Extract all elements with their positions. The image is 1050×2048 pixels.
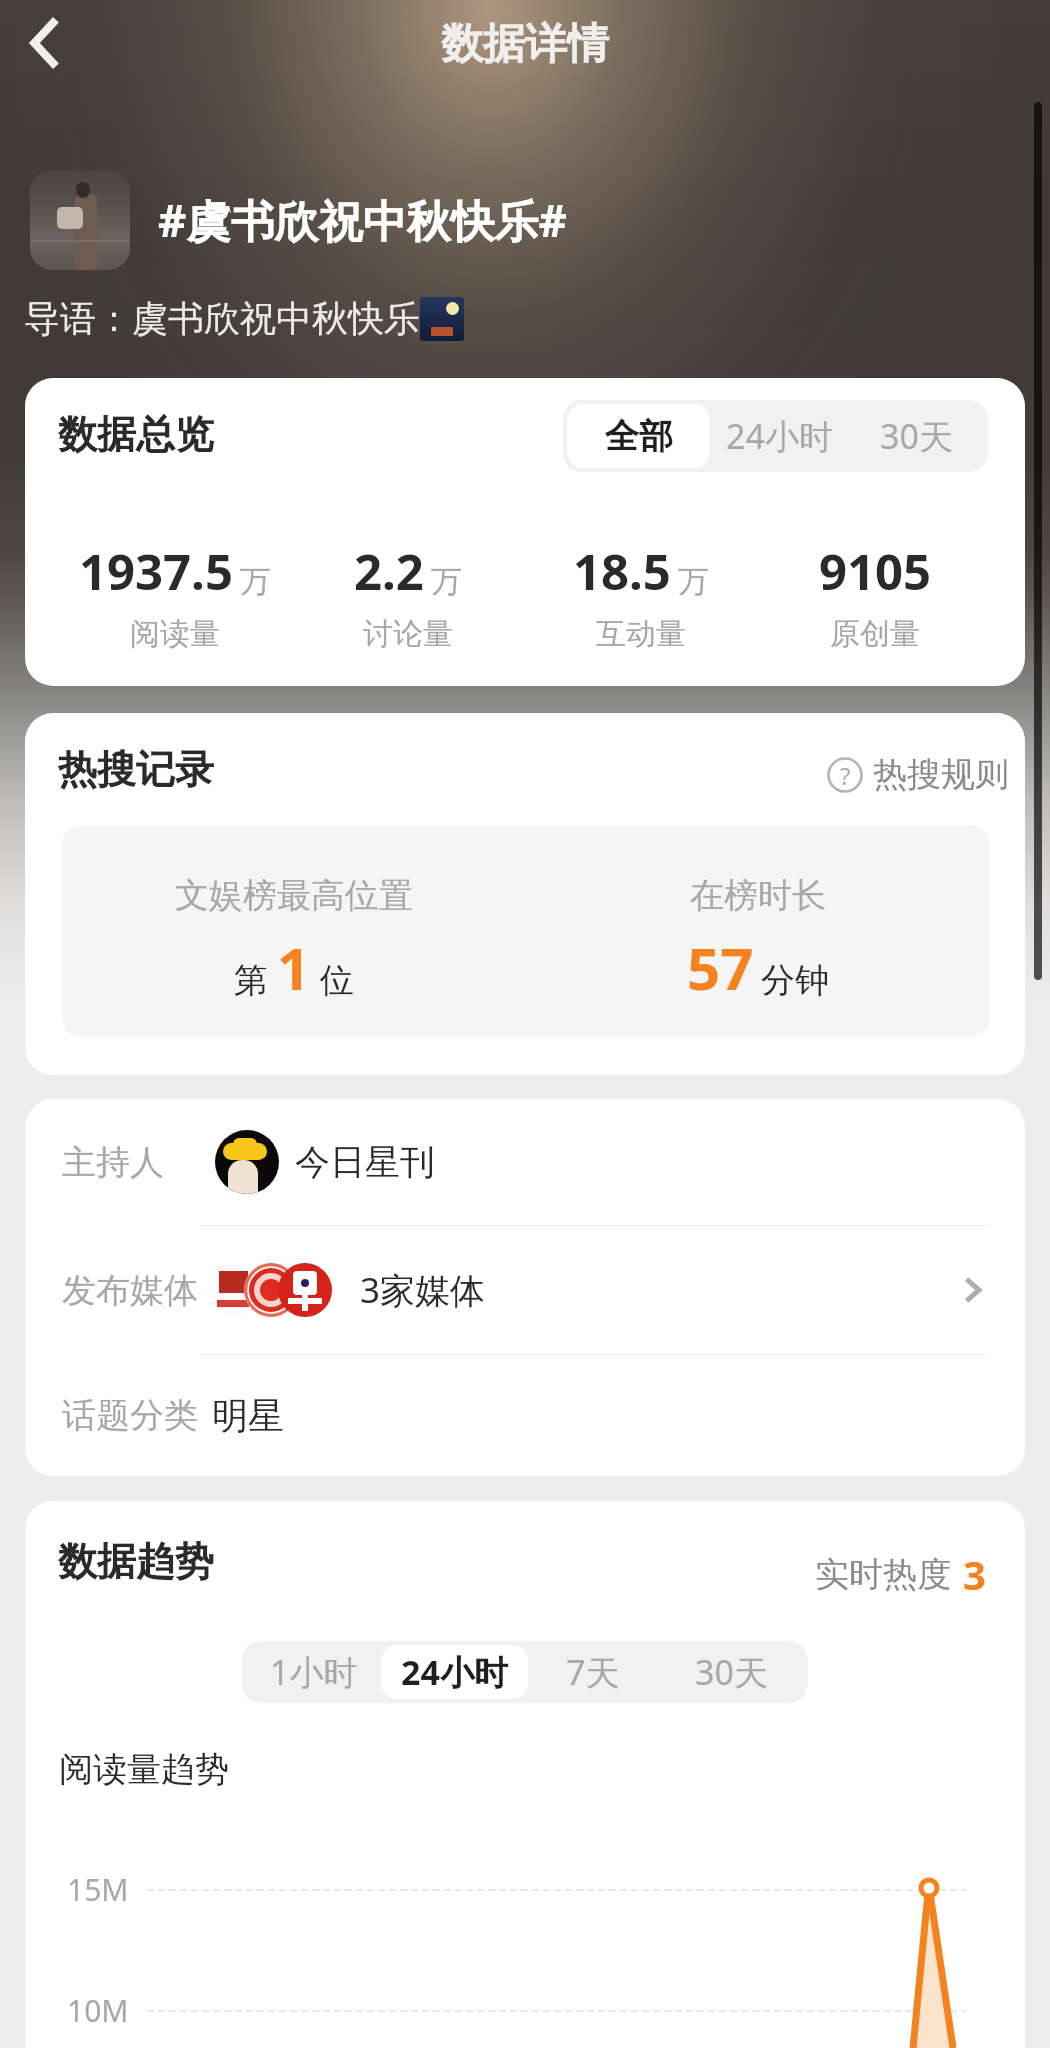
staticText: 第 <box>234 959 268 1002</box>
button[interactable]: ? <box>827 753 1009 796</box>
staticText: 24小时 <box>401 1649 508 1695</box>
staticText: 主持人 <box>62 1141 164 1184</box>
staticText: 在榜时长 <box>690 874 826 917</box>
staticText: 7天 <box>566 1649 620 1695</box>
staticText: 位 <box>320 959 354 1002</box>
staticText: 今日星刊 <box>295 1140 435 1184</box>
staticText: 阅读量趋势 <box>59 1748 229 1791</box>
staticText: 全部 <box>605 415 673 458</box>
button[interactable]: 7天 <box>528 1645 658 1699</box>
staticText: 3 <box>963 1547 986 1601</box>
staticText: 发布媒体 <box>62 1269 198 1312</box>
button[interactable]: 主持人 <box>62 1099 988 1225</box>
staticText: 数据详情 <box>441 18 609 71</box>
button[interactable]: 1小时 <box>246 1645 381 1699</box>
staticText: 阅读量 <box>130 615 220 653</box>
staticText: 热搜规则 <box>873 753 1009 796</box>
staticText: 实时热度 <box>815 1553 951 1596</box>
button[interactable]: 24小时 <box>710 404 848 468</box>
staticText: 讨论量 <box>363 615 453 653</box>
button[interactable]: 实时热度 <box>815 1547 986 1601</box>
button[interactable]: 24小时 <box>381 1645 528 1699</box>
staticText: 30天 <box>880 413 953 459</box>
staticText: 分钟 <box>761 959 829 1002</box>
staticText: 18.5 <box>573 538 671 605</box>
staticText: 万 <box>431 562 462 601</box>
staticText: 24小时 <box>726 413 833 459</box>
button[interactable]: 发布媒体 <box>62 1226 988 1354</box>
staticText: 文娱榜最高位置 <box>175 874 413 917</box>
button[interactable]: Back <box>4 3 84 83</box>
staticText: 1小时 <box>270 1649 358 1695</box>
staticText: 1937.5 <box>79 538 233 605</box>
button[interactable]: 30天 <box>848 404 984 468</box>
staticText: 热搜记录 <box>58 745 214 794</box>
staticText: 10M <box>67 1990 129 2031</box>
staticText: 30天 <box>695 1649 768 1695</box>
staticText: 数据趋势 <box>58 1537 214 1586</box>
staticText: 导语：虞书欣祝中秋快乐 <box>24 296 420 341</box>
staticText: 原创量 <box>830 615 920 653</box>
button[interactable]: 话题分类 <box>62 1355 988 1476</box>
staticText: 3家媒体 <box>360 1266 486 1314</box>
staticText: 数据总览 <box>58 410 214 459</box>
button[interactable]: 全部 <box>567 404 710 468</box>
staticText: #虞书欣祝中秋快乐# <box>158 190 567 250</box>
staticText: 1 <box>277 928 311 1007</box>
staticText: 话题分类 <box>62 1394 198 1437</box>
staticText: ? <box>840 759 851 792</box>
staticText: 万 <box>240 562 271 601</box>
staticText: 2.2 <box>354 538 424 605</box>
staticText: 万 <box>678 562 709 601</box>
button[interactable]: 30天 <box>658 1645 804 1699</box>
staticText: 57 <box>687 928 754 1007</box>
staticText: 明星 <box>212 1393 284 1438</box>
staticText: 15M <box>67 1869 129 1910</box>
staticText: 9105 <box>819 538 932 605</box>
staticText: 互动量 <box>596 615 686 653</box>
